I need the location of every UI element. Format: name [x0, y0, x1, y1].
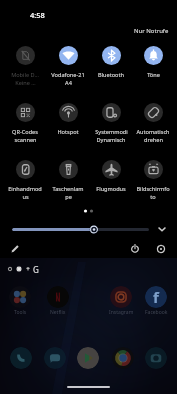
button[interactable]: App 0 [10, 347, 32, 369]
staticText: Facebook [145, 309, 168, 316]
staticText: Netflix [50, 309, 66, 316]
staticText: to [150, 193, 156, 201]
staticText: QR-Codes [12, 128, 38, 136]
staticText: scannen [14, 136, 37, 144]
staticText: Vodafone-21 [51, 71, 85, 79]
staticText: Flugmodus [96, 185, 126, 193]
staticText: Dynamisch [96, 136, 126, 144]
button[interactable]: Vodafone-21 [47, 46, 89, 84]
staticText: Automatisch [136, 128, 170, 136]
staticText: Hotspot [57, 128, 79, 136]
button[interactable]: QR-Codes [4, 103, 46, 141]
staticText: Taschenlam [52, 185, 84, 193]
button[interactable] [12, 228, 149, 231]
button[interactable]: Tools [0, 286, 40, 316]
staticText: pe [65, 193, 72, 201]
button[interactable]: Mehr anzeigen [155, 222, 169, 236]
button[interactable]: Bluetooth [90, 46, 132, 84]
staticText: Systemmodi [95, 128, 128, 136]
button[interactable]: Netflix [38, 286, 78, 316]
button[interactable]: Hotspot [47, 103, 89, 141]
staticText: Mobile D… [11, 71, 39, 79]
staticText: Keine … [15, 79, 36, 87]
staticText: A4 [65, 79, 72, 87]
staticText: 4:58 [30, 10, 45, 20]
button[interactable]: f [136, 286, 176, 316]
staticText: Instagram [109, 309, 134, 316]
button[interactable]: Taschenlam [47, 160, 89, 198]
staticText: f [153, 287, 159, 307]
staticText: Bildschirmfo [136, 185, 170, 193]
staticText: Tools [14, 309, 27, 316]
button[interactable]: Bearbeiten [7, 241, 23, 257]
button[interactable]: Systemmodi [90, 103, 132, 141]
staticText: Nur Notrufe [134, 27, 169, 35]
staticText: Bluetooth [98, 71, 124, 79]
button[interactable]: App 2 [77, 347, 99, 369]
button[interactable]: App 1 [44, 347, 66, 369]
button[interactable]: Instagram [101, 286, 141, 316]
button[interactable]: App 3 [112, 347, 134, 369]
staticText: Töne [147, 71, 160, 79]
button[interactable]: App 4 [145, 347, 167, 369]
button[interactable]: Bildschirmfo [132, 160, 174, 198]
button[interactable]: Automatisch [132, 103, 174, 141]
staticText: us [22, 193, 29, 201]
button[interactable]: Mobile D… [4, 46, 46, 84]
button[interactable]: Ein/Aus [127, 241, 143, 257]
staticText: drehen [144, 136, 163, 144]
button[interactable]: Töne [132, 46, 174, 84]
button[interactable]: Flugmodus [90, 160, 132, 198]
button[interactable]: Einhandmod [4, 160, 46, 198]
staticText: G [33, 264, 39, 274]
staticText: Einhandmod [8, 185, 42, 193]
button[interactable]: Einstellungen [153, 241, 169, 257]
